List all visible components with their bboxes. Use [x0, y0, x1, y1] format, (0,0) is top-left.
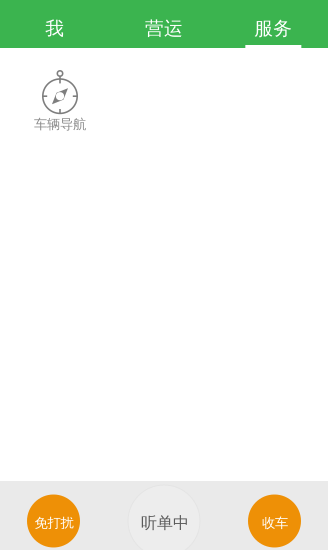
- button[interactable]: 免打扰: [27, 494, 80, 547]
- staticText: 服务: [254, 17, 292, 40]
- button[interactable]: 车辆导航: [19, 48, 101, 133]
- button[interactable]: 收车: [248, 494, 301, 547]
- staticText: 营运: [145, 17, 183, 40]
- button[interactable]: 营运: [109, 0, 219, 48]
- button[interactable]: 服务: [219, 0, 328, 48]
- staticText: 免打扰: [34, 515, 73, 531]
- staticText: 收车: [262, 515, 288, 531]
- button[interactable]: 听单中: [128, 485, 200, 550]
- button[interactable]: 我: [0, 0, 109, 48]
- staticText: 听单中: [141, 513, 189, 533]
- staticText: 车辆导航: [34, 116, 86, 133]
- staticText: 我: [45, 17, 64, 40]
